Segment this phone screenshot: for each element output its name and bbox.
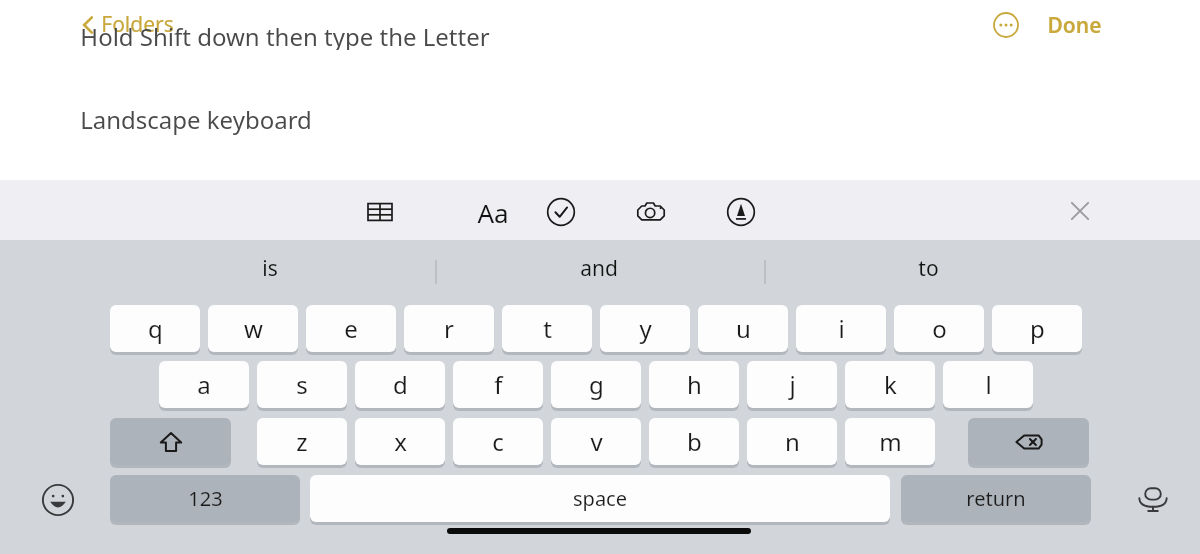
button[interactable]: Markup: [718, 189, 764, 235]
button[interactable]: Dictation: [1131, 475, 1175, 522]
staticText: i: [838, 312, 845, 345]
button[interactable]: k: [845, 361, 935, 408]
button[interactable]: Table: [357, 189, 403, 235]
button[interactable]: s: [257, 361, 347, 408]
button[interactable]: Checklist: [538, 189, 584, 235]
button[interactable]: More options: [985, 4, 1027, 46]
button[interactable]: u: [698, 305, 788, 352]
button[interactable]: h: [649, 361, 739, 408]
button[interactable]: z: [257, 418, 347, 465]
staticText: is: [262, 254, 278, 283]
button[interactable]: t: [502, 305, 592, 352]
button[interactable]: p: [992, 305, 1082, 352]
staticText: Hold Shift down then type the Letter: [80, 28, 490, 50]
staticText: t: [543, 312, 552, 345]
staticText: Done: [1047, 11, 1102, 40]
button[interactable]: m: [845, 418, 935, 465]
button[interactable]: v: [551, 418, 641, 465]
button[interactable]: j: [747, 361, 837, 408]
button[interactable]: Done: [1041, 5, 1108, 46]
staticText: r: [444, 312, 454, 345]
button[interactable]: to: [868, 246, 988, 290]
button[interactable]: Folders: [78, 6, 178, 43]
staticText: m: [879, 425, 902, 458]
staticText: return: [966, 485, 1026, 512]
button[interactable]: and: [539, 246, 659, 290]
staticText: b: [687, 425, 702, 458]
button[interactable]: return: [901, 475, 1091, 522]
staticText: x: [394, 425, 407, 458]
staticText: z: [296, 425, 308, 458]
staticText: to: [918, 254, 939, 283]
staticText: p: [1030, 312, 1045, 345]
button[interactable]: r: [404, 305, 494, 352]
button[interactable]: Shift: [110, 418, 231, 465]
button[interactable]: Emoji: [33, 475, 83, 525]
staticText: k: [884, 368, 897, 401]
staticText: j: [789, 368, 796, 401]
button[interactable]: is: [210, 246, 330, 290]
staticText: space: [573, 485, 627, 512]
button[interactable]: Close keyboard: [1058, 189, 1102, 233]
staticText: d: [393, 368, 408, 401]
button[interactable]: e: [306, 305, 396, 352]
button[interactable]: Backspace: [968, 418, 1089, 465]
button[interactable]: x: [355, 418, 445, 465]
button[interactable]: o: [894, 305, 984, 352]
button[interactable]: d: [355, 361, 445, 408]
button[interactable]: space: [310, 475, 890, 522]
button[interactable]: c: [453, 418, 543, 465]
staticText: s: [296, 368, 308, 401]
staticText: h: [687, 368, 702, 401]
button[interactable]: n: [747, 418, 837, 465]
staticText: u: [736, 312, 751, 345]
button[interactable]: y: [600, 305, 690, 352]
button[interactable]: a: [159, 361, 249, 408]
staticText: q: [148, 312, 163, 345]
button[interactable]: l: [943, 361, 1033, 408]
staticText: l: [985, 368, 992, 401]
staticText: and: [580, 254, 618, 283]
staticText: o: [932, 312, 947, 345]
staticText: v: [590, 425, 603, 458]
staticText: f: [494, 368, 503, 401]
staticText: c: [492, 425, 504, 458]
button[interactable]: b: [649, 418, 739, 465]
button[interactable]: g: [551, 361, 641, 408]
button[interactable]: f: [453, 361, 543, 408]
button[interactable]: 123: [110, 475, 300, 522]
staticText: n: [785, 425, 800, 458]
staticText: Aa: [477, 195, 509, 230]
button[interactable]: Camera: [628, 189, 674, 235]
staticText: 123: [188, 485, 223, 512]
staticText: a: [197, 368, 211, 401]
button[interactable]: Aa: [470, 189, 516, 235]
staticText: y: [639, 312, 652, 345]
staticText: g: [589, 368, 604, 401]
button[interactable]: i: [796, 305, 886, 352]
staticText: Landscape keyboard: [80, 103, 312, 136]
staticText: Folders: [101, 10, 174, 39]
button[interactable]: q: [110, 305, 200, 352]
staticText: w: [244, 312, 263, 345]
staticText: e: [344, 312, 358, 345]
button[interactable]: w: [208, 305, 298, 352]
